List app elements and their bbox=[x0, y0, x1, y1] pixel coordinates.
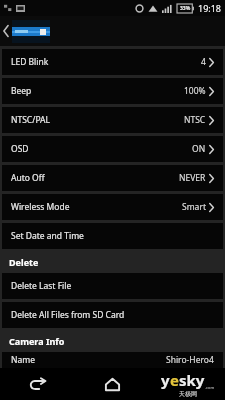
button[interactable]: OSD bbox=[2, 136, 223, 162]
button[interactable]: Back bbox=[0, 368, 75, 400]
button[interactable]: Set Date and Time bbox=[2, 223, 223, 249]
staticText: Set Date and Time bbox=[11, 230, 84, 242]
staticText: y bbox=[161, 370, 170, 390]
staticText: 19:18 bbox=[198, 2, 222, 14]
staticText: Name bbox=[11, 354, 35, 366]
staticText: e bbox=[170, 370, 179, 390]
button[interactable]: Delete All Files from SD Card bbox=[2, 302, 223, 328]
staticText: Wireless Mode bbox=[11, 201, 70, 213]
staticText: Smart bbox=[182, 201, 206, 213]
staticText: Delete All Files from SD Card bbox=[11, 309, 125, 321]
staticText: 4 bbox=[201, 56, 206, 68]
staticText: ON bbox=[192, 143, 206, 155]
staticText: Delete Last File bbox=[11, 280, 72, 292]
button[interactable]: Name bbox=[2, 352, 223, 368]
button[interactable]: Recent apps bbox=[150, 368, 225, 400]
staticText: 100% bbox=[184, 85, 206, 97]
staticText: LED Blink bbox=[11, 56, 49, 68]
staticText: 天极网 bbox=[179, 390, 197, 398]
staticText: 33% bbox=[180, 5, 191, 12]
staticText: NTSC/PAL bbox=[11, 114, 50, 126]
staticText: NTSC bbox=[184, 114, 206, 126]
button[interactable]: Delete Last File bbox=[2, 273, 223, 299]
button[interactable]: LED Blink bbox=[2, 49, 223, 75]
staticText: Beep bbox=[11, 85, 32, 97]
button[interactable]: Home bbox=[75, 368, 150, 400]
staticText: sky bbox=[179, 370, 205, 390]
button[interactable]: Wireless Mode bbox=[2, 194, 223, 220]
staticText: Shiro-Hero4 bbox=[166, 354, 214, 366]
staticText: OSD bbox=[11, 143, 29, 155]
staticText: NEVER bbox=[179, 172, 206, 184]
button[interactable]: Navigate up bbox=[0, 16, 56, 46]
staticText: Auto Off bbox=[11, 172, 45, 184]
staticText: Camera Info bbox=[9, 335, 65, 347]
button[interactable]: Auto Off bbox=[2, 165, 223, 191]
staticText: Delete bbox=[9, 256, 39, 268]
button[interactable]: NTSC/PAL bbox=[2, 107, 223, 133]
button[interactable]: Beep bbox=[2, 78, 223, 104]
staticText: .com bbox=[205, 385, 215, 390]
